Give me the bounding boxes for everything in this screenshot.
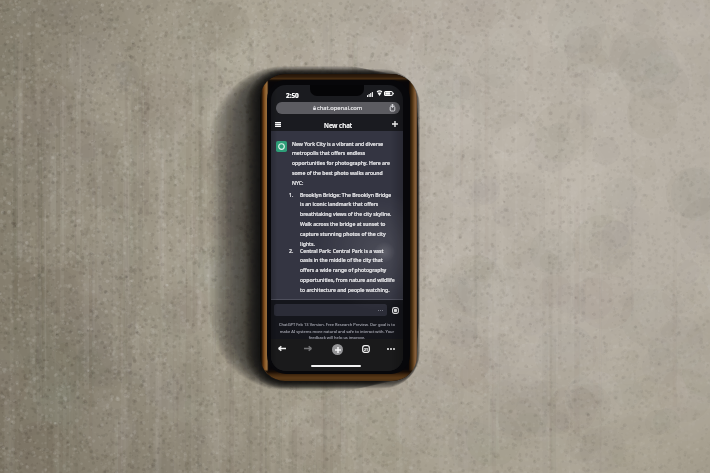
button[interactable]: Menu	[275, 122, 281, 127]
button[interactable]: chat.openai.com	[276, 102, 400, 114]
button[interactable]: Add	[332, 344, 343, 355]
staticText: Central Park: Central Park is a vast oas…	[300, 248, 395, 294]
staticText: Brooklyn Bridge: The Brooklyn Bridge is …	[300, 192, 395, 248]
button[interactable]: Back	[278, 345, 286, 352]
button[interactable]	[274, 304, 387, 316]
button[interactable]: Forward	[304, 345, 312, 352]
staticText: New York City is a vibrant and diverse m…	[292, 141, 391, 187]
button[interactable]: More	[387, 346, 395, 352]
staticText: New chat	[324, 121, 353, 130]
staticText: ChatGPT Feb 13 Version. Free Research Pr…	[276, 322, 398, 340]
staticText: 2.	[289, 248, 300, 255]
button[interactable]: Open in app	[392, 307, 399, 314]
button[interactable]: New chat	[392, 121, 398, 127]
staticText: 1.	[289, 192, 300, 199]
button[interactable]: Tabs	[362, 345, 370, 353]
staticText: 21	[364, 347, 368, 352]
staticText: chat.openai.com	[317, 104, 363, 112]
button[interactable]: Share	[390, 104, 395, 111]
staticText: 2:50	[286, 91, 299, 100]
